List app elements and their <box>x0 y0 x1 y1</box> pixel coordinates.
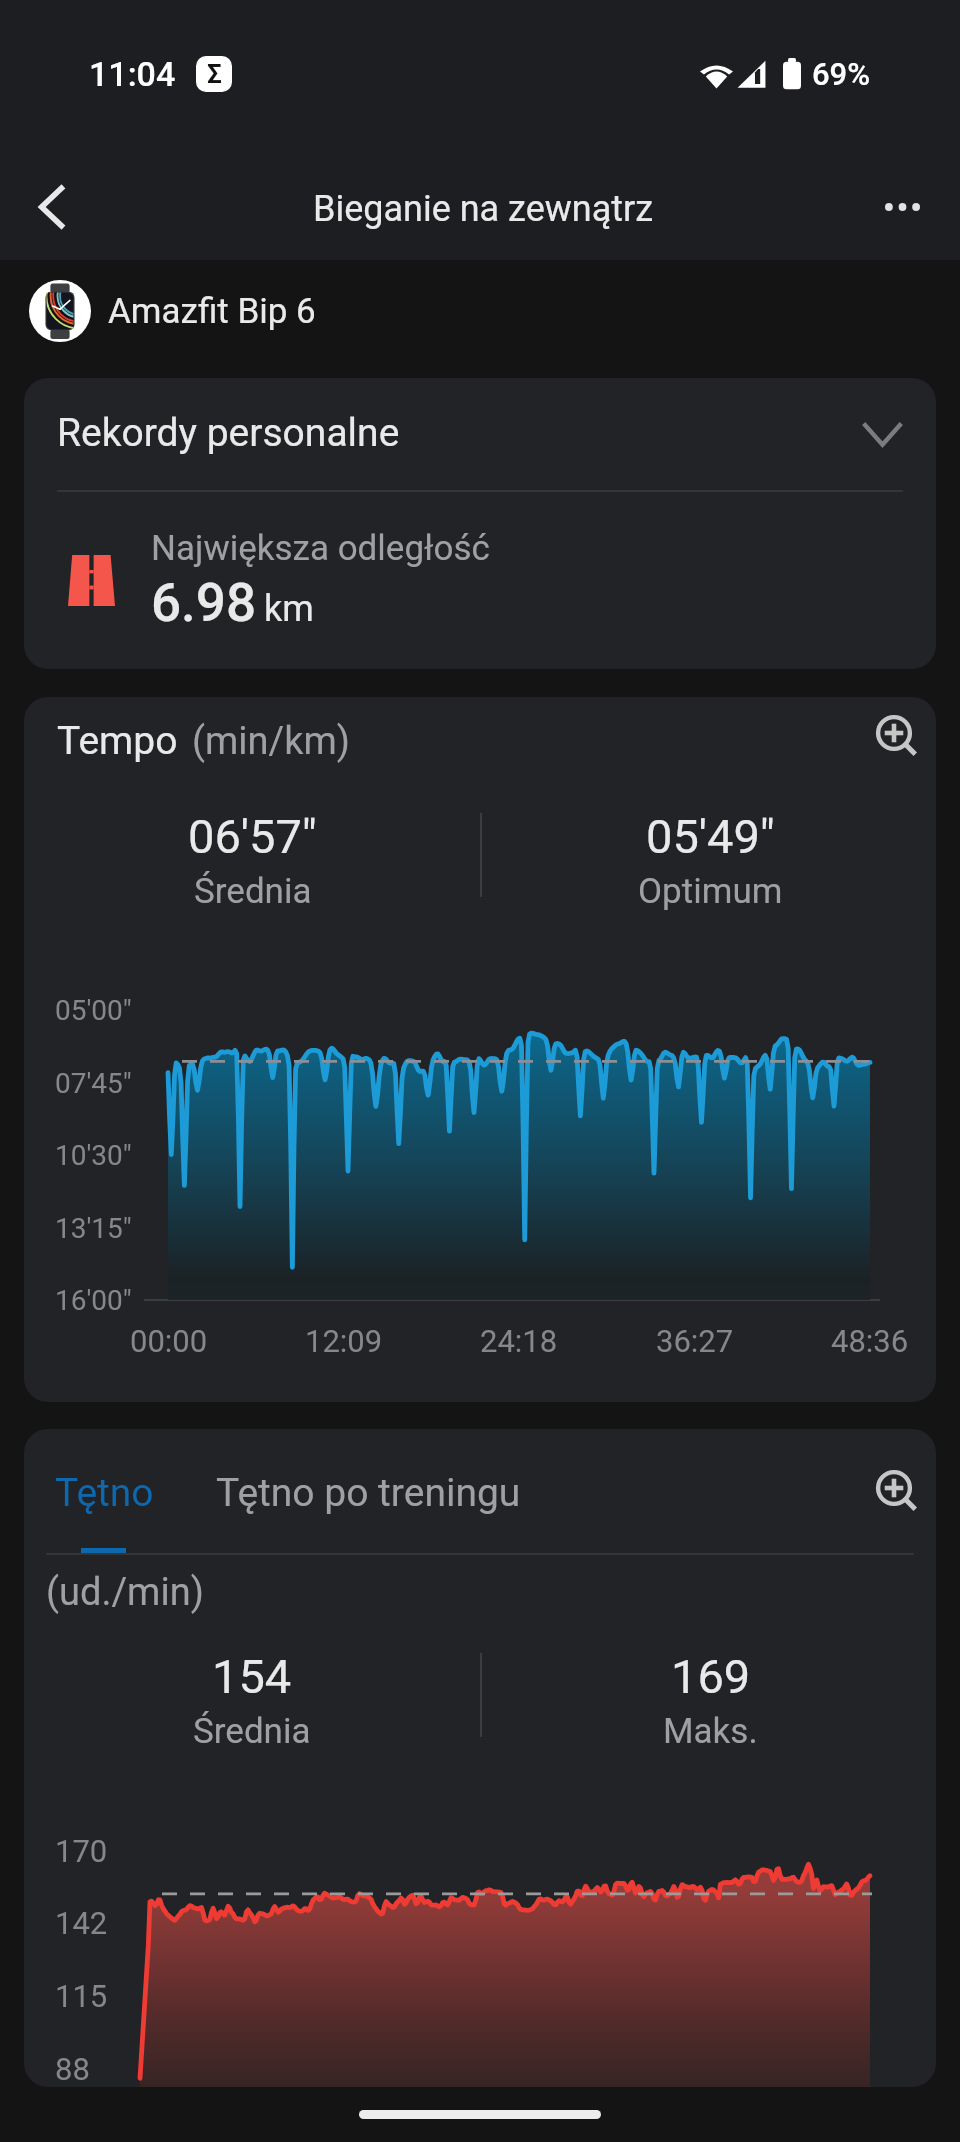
staticText: 24:18 <box>480 1323 558 1359</box>
staticText: 00:00 <box>130 1323 208 1359</box>
staticText: 13'15" <box>55 1212 132 1245</box>
staticText: 154 <box>212 1649 292 1704</box>
staticText: 88 <box>55 2051 90 2087</box>
button[interactable]: Zoom in <box>859 1454 931 1526</box>
staticText: Tętno <box>55 1470 154 1516</box>
staticText: 69% <box>812 56 871 92</box>
staticText: Rekordy personalne <box>57 410 400 456</box>
staticText: 36:27 <box>656 1323 734 1359</box>
button[interactable]: Amazfit Bip 6 <box>0 260 960 362</box>
button[interactable]: Rekordy personalne <box>24 378 936 490</box>
button[interactable]: Back <box>0 153 99 252</box>
staticText: 48:36 <box>831 1323 909 1359</box>
staticText: 07'45" <box>55 1067 132 1100</box>
staticText: 6.98 <box>151 572 257 634</box>
button[interactable]: Tętno po treningu <box>216 1470 521 1516</box>
staticText: Optimum <box>638 871 783 912</box>
staticText: Tempo <box>57 718 178 764</box>
staticText: 06'57" <box>188 809 317 864</box>
staticText: Największa odległość <box>151 528 490 569</box>
staticText: 10'30" <box>55 1139 132 1172</box>
staticText: Amazfit Bip 6 <box>108 291 316 332</box>
staticText: 12:09 <box>305 1323 383 1359</box>
staticText: km <box>264 588 314 630</box>
staticText: 142 <box>55 1905 108 1941</box>
button[interactable]: Zoom in <box>859 699 931 771</box>
staticText: 16'00" <box>55 1284 132 1317</box>
staticText: (ud./min) <box>46 1570 204 1615</box>
staticText: Bieganie na zewnątrz <box>313 188 654 230</box>
button[interactable]: More options <box>861 153 960 252</box>
staticText: 05'00" <box>55 994 132 1027</box>
staticText: Średnia <box>193 1711 311 1752</box>
staticText: Średnia <box>194 871 312 912</box>
staticText: 05'49" <box>646 809 775 864</box>
button[interactable]: Tętno <box>55 1470 154 1516</box>
staticText: Maks. <box>663 1711 758 1752</box>
staticText: 115 <box>55 1978 108 2014</box>
staticText: Tętno po treningu <box>216 1470 521 1516</box>
staticText: (min/km) <box>192 719 351 764</box>
staticText: 170 <box>55 1833 108 1869</box>
staticText: Σ <box>207 59 222 89</box>
staticText: 11:04 <box>89 54 176 94</box>
staticText: 169 <box>671 1649 751 1704</box>
